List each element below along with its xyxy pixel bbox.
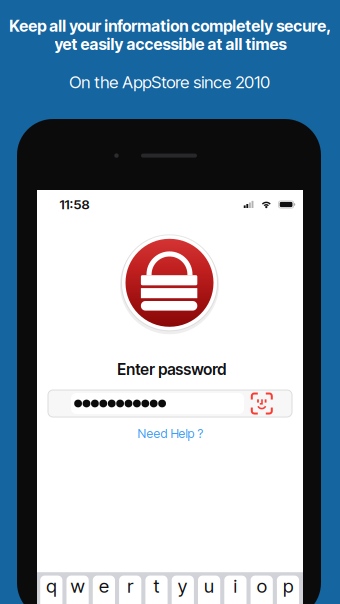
button[interactable]: w	[66, 576, 89, 604]
button[interactable]: u	[198, 576, 220, 604]
staticText: o	[257, 575, 267, 597]
staticText: u	[204, 575, 214, 597]
staticText: e	[99, 575, 109, 597]
staticText: y	[178, 575, 188, 597]
button[interactable]: q	[40, 576, 62, 604]
staticText: q	[46, 575, 56, 597]
staticText: p	[283, 575, 293, 597]
button[interactable]: t	[145, 576, 168, 604]
button[interactable]: e	[93, 576, 115, 604]
staticText: Keep all your information completely sec…	[9, 16, 331, 35]
button[interactable]: p	[277, 576, 299, 604]
staticText: Need Help ?	[138, 426, 204, 441]
button[interactable]: i	[224, 576, 246, 604]
button[interactable]: r	[119, 576, 141, 604]
staticText: On the AppStore since 2010	[69, 72, 270, 92]
button[interactable]: y	[172, 576, 194, 604]
staticText: i	[233, 575, 237, 597]
button[interactable]: Unlock with Face ID	[247, 390, 277, 417]
button[interactable]: Need Help ?	[130, 421, 212, 446]
staticText: Enter password	[117, 360, 226, 379]
staticText: w	[71, 575, 85, 597]
staticText: t	[153, 575, 159, 597]
button[interactable]: o	[251, 576, 273, 604]
staticText: yet easily accessible at all times	[55, 35, 287, 54]
staticText: 11:58	[59, 196, 89, 212]
staticText: r	[127, 575, 133, 597]
